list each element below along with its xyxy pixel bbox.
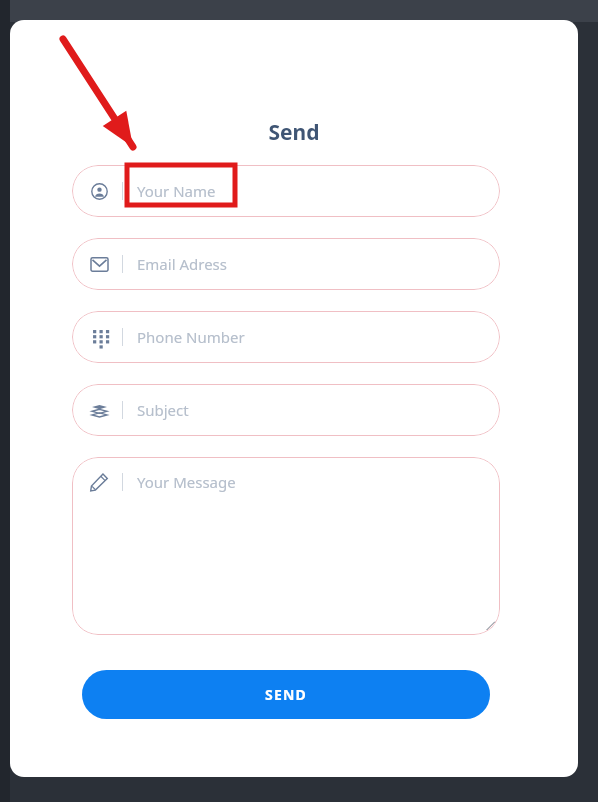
button[interactable]: Email: [72, 238, 500, 290]
other: Subject: [91, 402, 108, 419]
button[interactable]: SEND: [82, 670, 490, 719]
button[interactable]: Message: [72, 457, 500, 635]
other: Name: [91, 183, 108, 200]
other: Phone number: [91, 329, 108, 346]
button[interactable]: Name: [72, 165, 500, 217]
other: Email: [91, 256, 108, 273]
staticText: Email Adress: [137, 254, 227, 274]
staticText: SEND: [265, 685, 307, 704]
staticText: Your Name: [137, 181, 216, 201]
button[interactable]: Phone number: [72, 311, 500, 363]
staticText: Send: [10, 118, 578, 147]
staticText: Subject: [137, 400, 189, 420]
other: Message: [90, 473, 108, 491]
staticText: Your Message: [137, 472, 236, 492]
staticText: Phone Number: [137, 327, 245, 347]
button[interactable]: Subject: [72, 384, 500, 436]
